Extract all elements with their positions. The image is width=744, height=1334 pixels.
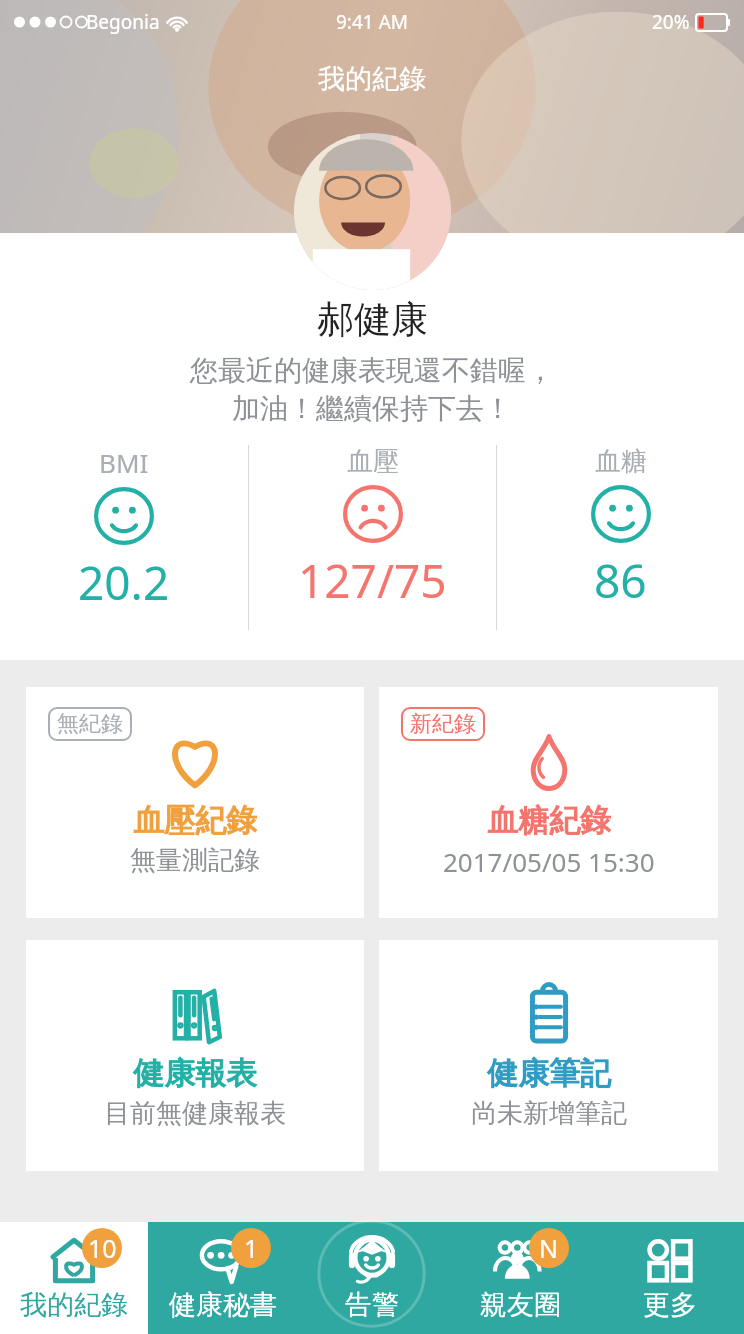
staticText: 新紀錄 [410,710,476,738]
staticText: 86 [594,549,647,612]
staticText: N [539,1231,559,1265]
button[interactable]: 血壓 [249,445,496,630]
button[interactable]: 健康筆記 [379,940,718,1171]
button[interactable]: Profile photo [294,133,451,290]
staticText: 血糖紀錄 [487,801,611,840]
staticText: 更多 [643,1288,697,1322]
staticText: 健康報表 [133,1054,257,1093]
staticText: 10 [88,1231,117,1265]
staticText: 127/75 [298,549,447,612]
button[interactable]: 10 [0,1222,148,1334]
staticText: 您最近的健康表現還不錯喔， 加油！繼續保持下去！ [190,353,554,427]
staticText: 20.2 [78,551,170,614]
staticText: 血壓紀錄 [133,801,257,840]
button[interactable]: 1 [148,1222,297,1334]
staticText: 無量測記錄 [130,844,260,877]
staticText: 告警 [345,1288,399,1322]
button[interactable]: BMI [0,445,248,630]
staticText: 血糖 [595,445,647,478]
staticText: 無紀錄 [57,710,123,738]
staticText: 目前無健康報表 [104,1097,286,1130]
staticText: 9:41 AM [336,9,409,35]
staticText: 1 [244,1231,259,1265]
button[interactable]: 血糖 [497,445,744,630]
button[interactable]: 無紀錄 [26,687,364,918]
button[interactable]: 告警 [297,1222,446,1334]
staticText: 2017/05/05 15:30 [443,844,655,879]
staticText: 20% [652,9,690,35]
button[interactable]: 健康報表 [26,940,364,1171]
staticText: 血壓 [347,445,399,478]
staticText: 尚未新增筆記 [471,1097,627,1130]
staticText: BMI [99,445,149,480]
button[interactable]: 更多 [595,1222,744,1334]
staticText: 郝健康 [317,296,428,343]
staticText: Begonia [86,9,160,35]
button[interactable]: 新紀錄 [379,687,718,918]
staticText: 我的紀錄 [318,62,426,96]
staticText: 親友圈 [480,1288,561,1322]
staticText: 健康秘書 [169,1288,277,1322]
button[interactable]: N [446,1222,595,1334]
staticText: 健康筆記 [487,1054,611,1093]
staticText: 我的紀錄 [20,1288,128,1322]
